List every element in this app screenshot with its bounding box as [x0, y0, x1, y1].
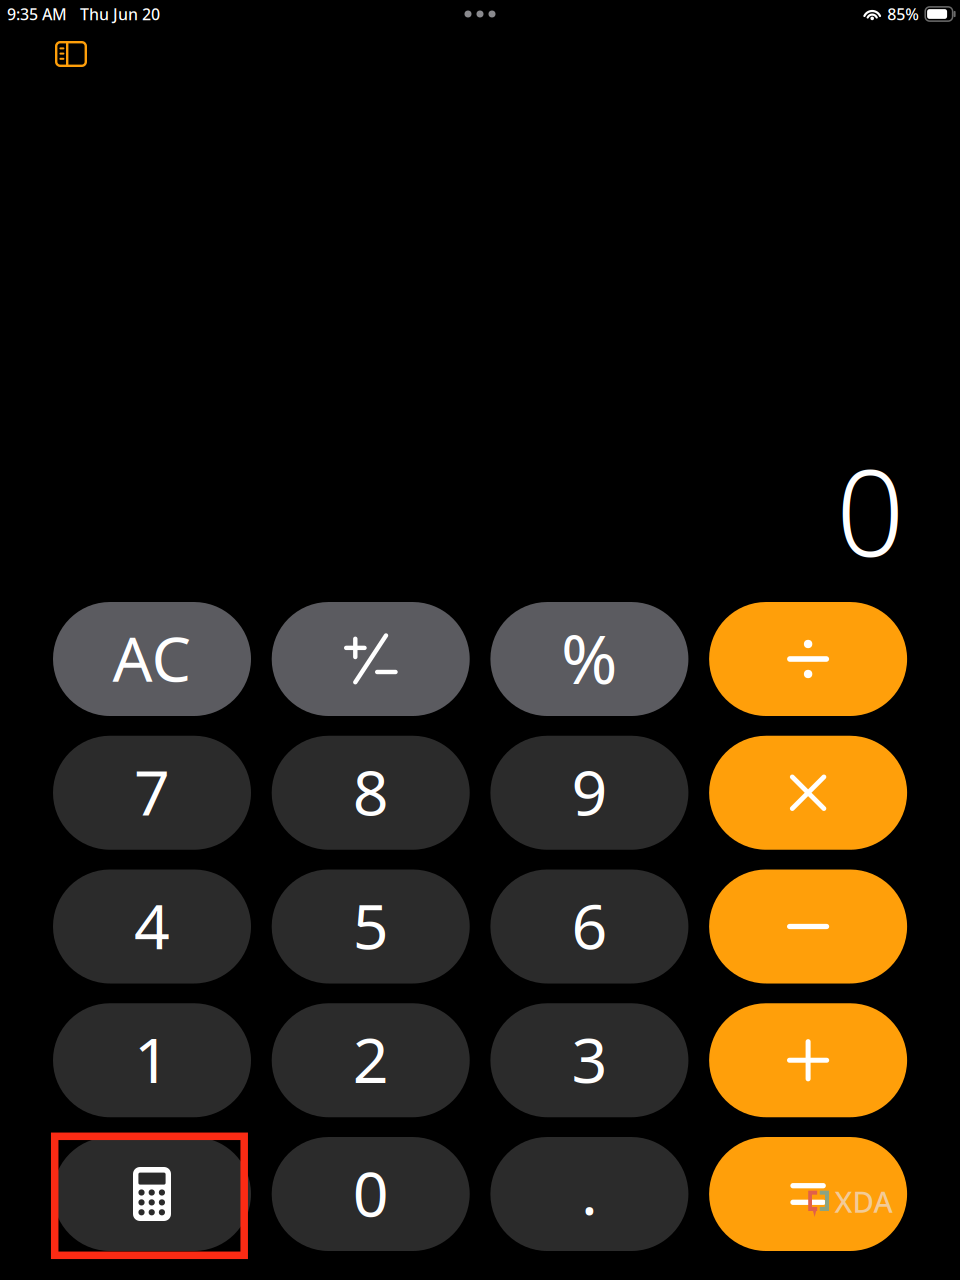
button[interactable]: Plus — [709, 1003, 907, 1117]
staticText: 0 — [353, 1151, 389, 1234]
staticText: 2 — [353, 1017, 389, 1100]
staticText: 1 — [134, 1017, 170, 1100]
button[interactable]: Minus — [709, 869, 907, 983]
button[interactable]: 9 — [490, 736, 688, 850]
staticText: 5 — [353, 883, 389, 967]
button[interactable]: 7 — [53, 736, 251, 850]
staticText: 9 — [571, 750, 607, 833]
staticText: 8 — [353, 750, 389, 833]
staticText: AC — [112, 616, 191, 699]
button[interactable]: All Clear — [53, 602, 251, 716]
staticText: 7 — [134, 750, 170, 833]
button[interactable]: 6 — [490, 869, 688, 983]
button[interactable]: 1 — [53, 1003, 251, 1117]
staticText: Thu Jun 20 — [80, 3, 160, 25]
staticText: 0 — [836, 430, 905, 590]
staticText: 6 — [571, 883, 607, 967]
button[interactable]: Plus Minus — [272, 602, 470, 716]
button[interactable]: 8 — [272, 736, 470, 850]
button[interactable]: 2 — [272, 1003, 470, 1117]
button[interactable]: Divide — [709, 602, 907, 716]
button[interactable]: Multiply — [709, 736, 907, 850]
button[interactable]: 3 — [490, 1003, 688, 1117]
button[interactable]: 0 — [272, 1137, 470, 1251]
button[interactable]: Show Sidebar — [41, 30, 101, 78]
staticText: . — [581, 1149, 598, 1232]
button[interactable]: 4 — [53, 869, 251, 983]
staticText: 3 — [571, 1017, 607, 1100]
staticText: XDA — [834, 1182, 892, 1221]
button[interactable]: Calculator — [53, 1137, 251, 1251]
staticText: 4 — [134, 883, 170, 967]
staticText: 85% — [887, 3, 919, 25]
button[interactable]: Decimal Point — [490, 1137, 688, 1251]
button[interactable]: 5 — [272, 869, 470, 983]
button[interactable]: Percent — [490, 602, 688, 716]
staticText: 9:35 AM — [7, 3, 67, 25]
staticText: % — [561, 612, 618, 703]
button[interactable]: Equals — [709, 1137, 907, 1251]
